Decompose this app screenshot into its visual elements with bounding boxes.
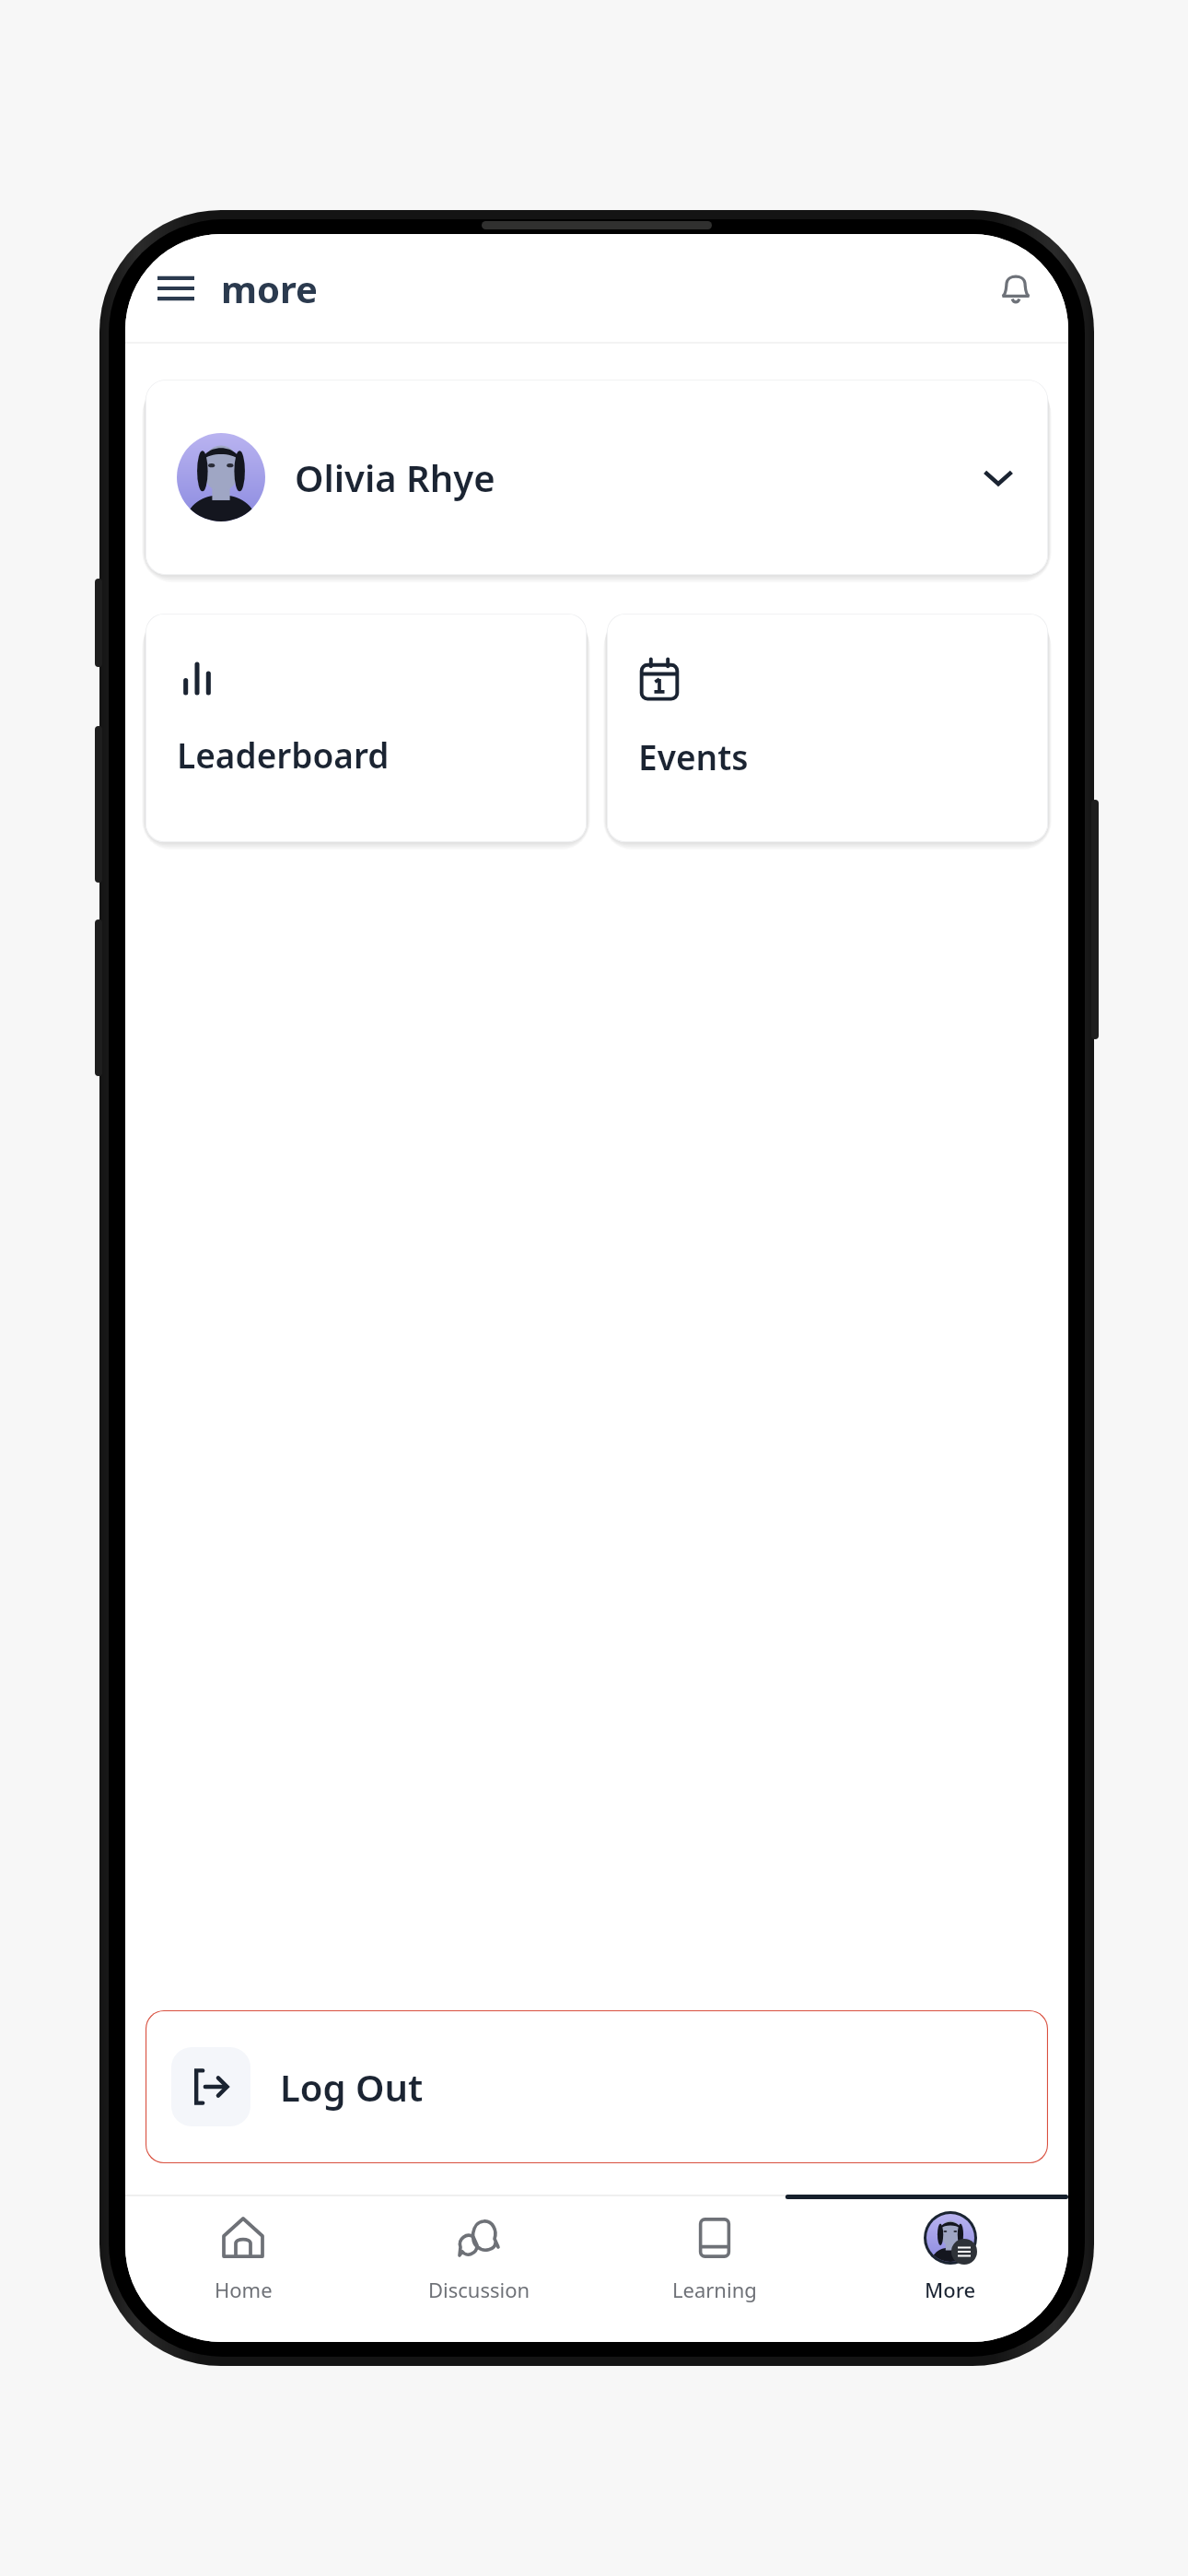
staticText: Events [638,733,749,779]
staticText: Leaderboard [177,732,390,778]
staticText: Discussion [428,2276,530,2303]
button[interactable]: More [833,2209,1068,2320]
button[interactable]: Events [607,614,1048,842]
button[interactable]: Open navigation menu [149,262,203,315]
staticText: Home [215,2276,273,2303]
button[interactable]: Olivia Rhye [146,380,1048,575]
staticText: Olivia Rhye [295,452,495,502]
staticText: more [221,263,318,313]
staticText: Learning [672,2276,757,2303]
staticText: Log Out [280,2062,424,2112]
button[interactable]: Discussion [361,2209,597,2320]
button[interactable]: Leaderboard [146,614,587,842]
button[interactable]: Home [125,2209,361,2320]
staticText: More [925,2276,976,2303]
button[interactable]: Log Out [146,2010,1048,2163]
button[interactable]: Learning [597,2209,833,2320]
button[interactable]: Notifications [987,260,1044,317]
